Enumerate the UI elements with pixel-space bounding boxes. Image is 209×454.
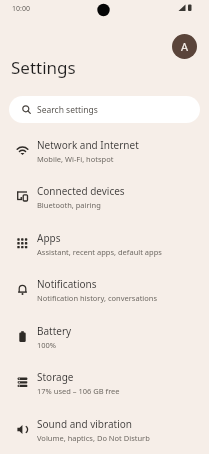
staticText: Mobile, Wi-Fi, hotspot	[37, 154, 114, 164]
staticText: Sound and vibration	[37, 417, 132, 431]
staticText: A	[181, 39, 189, 54]
staticText: Storage	[37, 370, 74, 384]
button[interactable]: Apps	[0, 220, 209, 267]
staticText: Notification history, conversations	[37, 293, 158, 303]
button[interactable]: A	[172, 34, 197, 59]
button[interactable]: Connected devices	[0, 173, 209, 220]
staticText: Volume, haptics, Do Not Disturb	[37, 433, 150, 443]
button[interactable]: Battery	[0, 313, 209, 360]
staticText: Search settings	[37, 104, 98, 116]
button[interactable]: Storage	[0, 359, 209, 406]
staticText: 17% used – 106 GB free	[37, 386, 120, 396]
staticText: Assistant, recent apps, default apps	[37, 247, 162, 257]
staticText: 10:00	[12, 4, 30, 14]
staticText: 100%	[37, 340, 57, 350]
staticText: Settings	[11, 56, 76, 79]
staticText: Connected devices	[37, 184, 125, 198]
staticText: Battery	[37, 324, 72, 338]
staticText: Notifications	[37, 277, 97, 291]
button[interactable]: Notifications	[0, 266, 209, 313]
staticText: Network and Internet	[37, 138, 139, 152]
staticText: Bluetooth, pairing	[37, 200, 101, 210]
button[interactable]: Network and Internet	[0, 127, 209, 174]
staticText: Apps	[37, 231, 61, 245]
button[interactable]: Search settings	[9, 96, 200, 123]
button[interactable]: Sound and vibration	[0, 406, 209, 453]
